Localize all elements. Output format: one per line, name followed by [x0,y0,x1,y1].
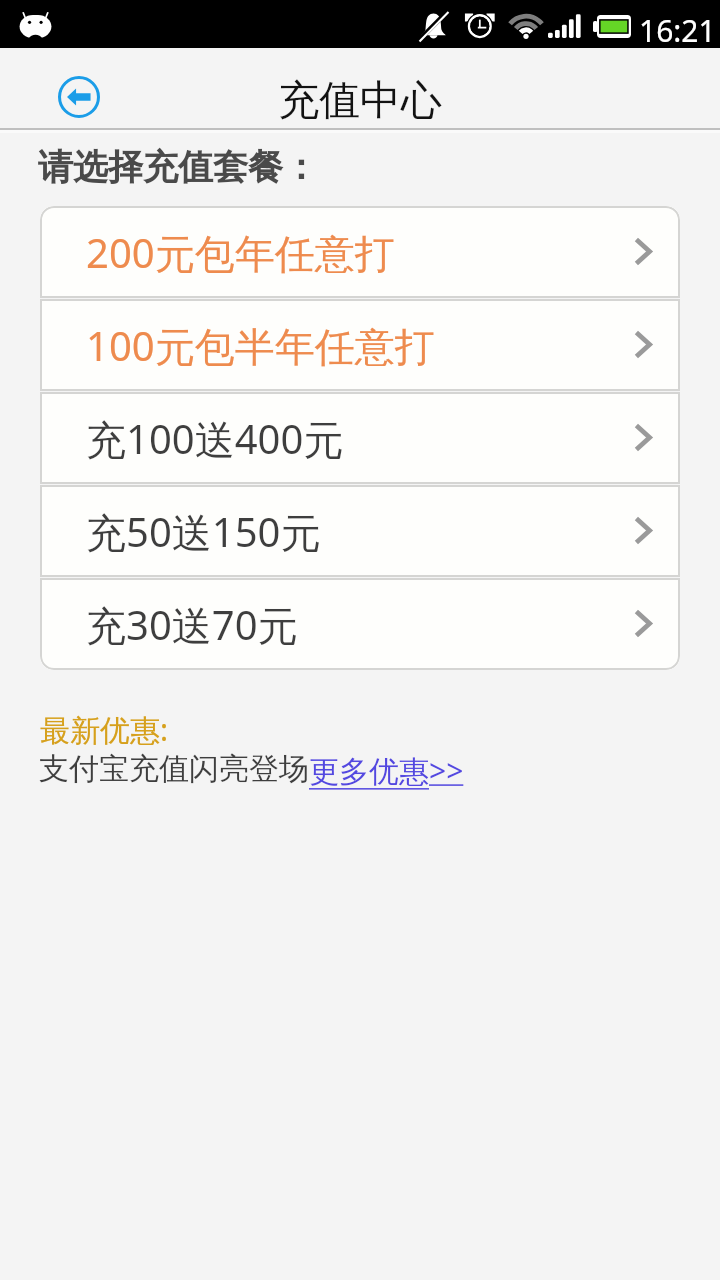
button[interactable]: 更多优惠>> [309,750,464,791]
staticText: 支付宝充值闪亮登场 [39,750,309,788]
staticText: 200元包年任意打 [86,225,395,280]
staticText: 充50送150元 [86,504,321,559]
staticText: 最新优惠: [40,709,169,750]
staticText: 充30送70元 [86,597,298,652]
button[interactable]: 充100送400元 [40,392,680,484]
staticText: 请选择充值套餐： [38,145,318,189]
button[interactable]: 充50送150元 [40,485,680,577]
button[interactable]: 200元包年任意打 [40,206,680,298]
staticText: 充100送400元 [86,411,344,466]
button[interactable]: Back [47,65,111,129]
button[interactable]: 100元包半年任意打 [40,299,680,391]
staticText: 充值中心 [278,75,442,127]
button[interactable]: 充30送70元 [40,578,680,670]
staticText: 16:21 [639,10,716,51]
staticText: 100元包半年任意打 [86,318,435,373]
